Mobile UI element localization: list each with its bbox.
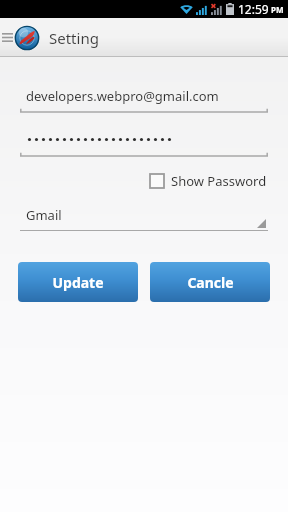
staticText: Update <box>52 273 104 292</box>
button[interactable] <box>20 127 268 157</box>
staticText: Gmail <box>26 206 62 224</box>
staticText: Show Password <box>171 172 267 190</box>
button[interactable]: Update <box>18 262 138 302</box>
staticText: PM <box>271 4 284 15</box>
button[interactable]: Gmail <box>20 203 268 231</box>
button[interactable]: Cancle <box>150 262 270 302</box>
staticText: developers.webpro@gmail.com <box>26 87 219 105</box>
staticText: Cancle <box>187 273 234 292</box>
button[interactable]: developers.webpro@gmail.com <box>20 83 268 113</box>
button[interactable]: Menu <box>0 18 15 57</box>
button[interactable]: Show Password <box>148 168 269 194</box>
staticText: Setting <box>49 28 99 48</box>
staticText: 12:59 <box>238 1 269 17</box>
